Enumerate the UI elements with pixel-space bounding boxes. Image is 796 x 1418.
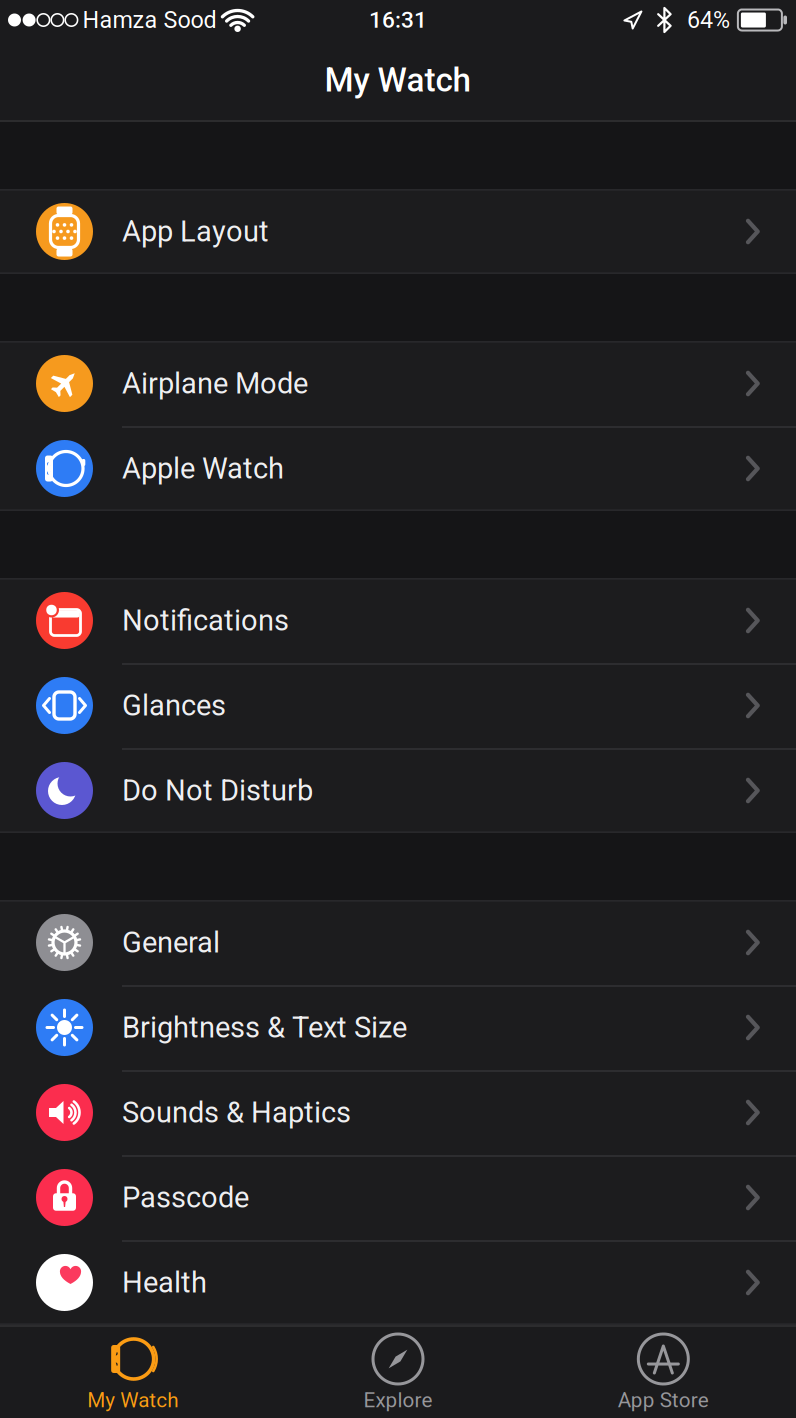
staticText: Glances bbox=[122, 688, 226, 723]
staticText: 16:31 bbox=[369, 7, 427, 33]
button[interactable]: Health bbox=[0, 1240, 796, 1325]
staticText: Airplane Mode bbox=[122, 366, 308, 401]
button[interactable]: App Store bbox=[531, 1332, 796, 1412]
staticText: App Layout bbox=[122, 214, 269, 249]
staticText: Health bbox=[122, 1265, 207, 1300]
button[interactable]: App Layout bbox=[0, 189, 796, 274]
staticText: General bbox=[122, 925, 220, 960]
button[interactable]: My Watch bbox=[0, 1332, 265, 1412]
button[interactable]: Sounds & Haptics bbox=[0, 1070, 796, 1155]
staticText: Sounds & Haptics bbox=[122, 1095, 351, 1130]
staticText: My Watch bbox=[324, 60, 471, 100]
button[interactable]: Notifications bbox=[0, 578, 796, 663]
button[interactable]: Apple Watch bbox=[0, 426, 796, 511]
staticText: Passcode bbox=[122, 1180, 249, 1215]
staticText: Notifications bbox=[122, 603, 289, 638]
staticText: Do Not Disturb bbox=[122, 773, 313, 808]
button[interactable]: General bbox=[0, 900, 796, 985]
button[interactable]: Do Not Disturb bbox=[0, 748, 796, 833]
staticText: Hamza Sood bbox=[83, 6, 217, 34]
button[interactable]: Glances bbox=[0, 663, 796, 748]
staticText: Explore bbox=[363, 1388, 432, 1412]
staticText: Apple Watch bbox=[122, 451, 284, 486]
button[interactable]: Brightness & Text Size bbox=[0, 985, 796, 1070]
staticText: App Store bbox=[618, 1388, 709, 1412]
staticText: My Watch bbox=[87, 1388, 178, 1412]
button[interactable]: Explore bbox=[265, 1332, 531, 1412]
staticText: Brightness & Text Size bbox=[122, 1010, 407, 1045]
button[interactable]: Passcode bbox=[0, 1155, 796, 1240]
staticText: 64% bbox=[687, 6, 730, 34]
button[interactable]: Airplane Mode bbox=[0, 341, 796, 426]
